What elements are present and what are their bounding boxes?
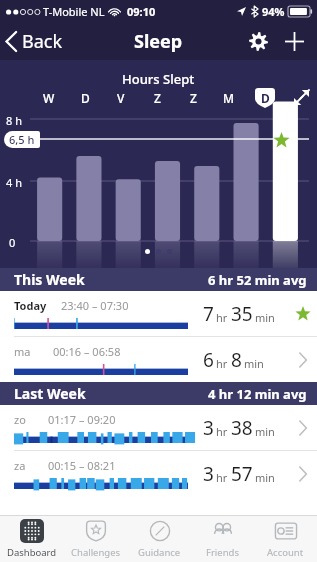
staticText: Challenges: [71, 546, 121, 559]
staticText: Z: [154, 90, 161, 106]
button[interactable]: Z: [175, 88, 211, 108]
staticText: 01:17 – 09:20: [48, 412, 116, 427]
staticText: hr: [216, 470, 228, 485]
staticText: hr: [216, 356, 228, 371]
staticText: zo: [14, 412, 26, 427]
button[interactable]: Guidance: [128, 516, 191, 562]
button[interactable]: Expand chart: [290, 86, 312, 108]
button[interactable]: Add: [279, 26, 309, 56]
staticText: min: [244, 356, 264, 371]
button[interactable]: D: [247, 88, 283, 108]
staticText: Guidance: [138, 546, 181, 559]
staticText: za: [14, 458, 26, 473]
staticText: 3: [203, 461, 214, 487]
button[interactable]: Dashboard: [0, 516, 64, 562]
staticText: V: [117, 90, 125, 106]
staticText: M: [223, 90, 235, 106]
button[interactable]: ma: [0, 337, 317, 382]
staticText: D: [261, 90, 270, 106]
button[interactable]: zo: [0, 405, 317, 450]
staticText: W: [43, 90, 55, 106]
staticText: 8: [231, 347, 242, 373]
staticText: 0: [9, 235, 16, 250]
staticText: 23:40 – 07:30: [61, 298, 129, 313]
staticText: 57: [231, 461, 253, 487]
staticText: Z: [190, 90, 197, 106]
staticText: 6,5 h: [9, 132, 35, 147]
staticText: ma: [14, 344, 31, 359]
button[interactable]: Settings: [243, 26, 273, 56]
staticText: 7: [203, 301, 214, 327]
staticText: T-Mobile NL: [43, 4, 105, 19]
button[interactable]: Challenges: [64, 516, 128, 562]
staticText: min: [255, 424, 275, 439]
staticText: Hours Slept: [122, 70, 195, 88]
button[interactable]: Back: [0, 25, 71, 58]
staticText: 3: [203, 415, 214, 441]
staticText: This Week: [14, 270, 85, 289]
staticText: 00:15 – 08:21: [48, 458, 116, 473]
staticText: 6 hr 52 min avg: [208, 271, 307, 289]
staticText: 35: [231, 301, 253, 327]
button[interactable]: V: [103, 88, 139, 108]
staticText: 38: [231, 415, 253, 441]
button[interactable]: Account: [254, 516, 317, 562]
staticText: hr: [216, 310, 228, 325]
staticText: 4 hr 12 min avg: [208, 385, 307, 403]
staticText: 09:10: [127, 4, 156, 19]
staticText: 00:16 – 06:58: [53, 344, 121, 359]
staticText: 94%: [262, 4, 285, 19]
staticText: min: [255, 470, 275, 485]
staticText: Today: [14, 298, 47, 313]
button[interactable]: Z: [139, 88, 175, 108]
staticText: 6: [203, 347, 214, 373]
button[interactable]: za: [0, 451, 317, 496]
staticText: Friends: [206, 546, 239, 559]
staticText: Dashboard: [7, 546, 57, 559]
staticText: Account: [267, 546, 304, 559]
button[interactable]: M: [211, 88, 247, 108]
staticText: D: [81, 90, 90, 106]
button[interactable]: D: [67, 88, 103, 108]
button[interactable]: Today: [0, 291, 317, 336]
button[interactable]: Friends: [191, 516, 254, 562]
staticText: Last Week: [14, 384, 86, 403]
staticText: 4 h: [6, 175, 22, 190]
button[interactable]: W: [30, 88, 67, 108]
staticText: Back: [22, 29, 63, 54]
staticText: hr: [216, 424, 228, 439]
staticText: 8 h: [6, 113, 22, 128]
staticText: Sleep: [134, 29, 183, 54]
staticText: min: [255, 310, 275, 325]
